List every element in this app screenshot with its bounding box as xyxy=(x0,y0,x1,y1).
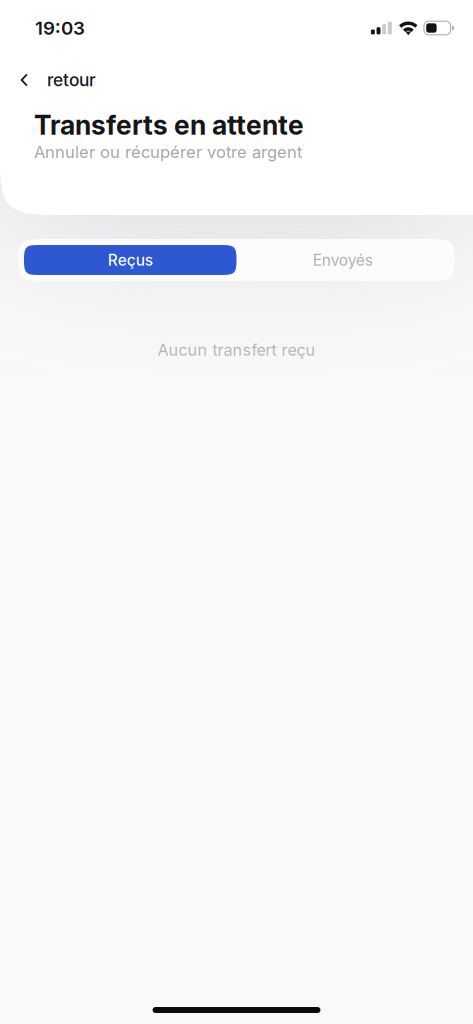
staticText: 19:03 xyxy=(35,17,85,39)
button[interactable]: Reçus xyxy=(24,245,236,275)
staticText: Aucun transfert reçu xyxy=(157,340,315,359)
button[interactable]: Envoyés xyxy=(236,245,449,275)
staticText: Transferts en attente xyxy=(34,109,304,141)
staticText: retour xyxy=(47,69,96,90)
staticText: Reçus xyxy=(108,251,153,269)
staticText: Envoyés xyxy=(313,251,373,269)
staticText: Annuler ou récupérer votre argent xyxy=(34,142,302,162)
button[interactable]: retour xyxy=(0,63,114,97)
